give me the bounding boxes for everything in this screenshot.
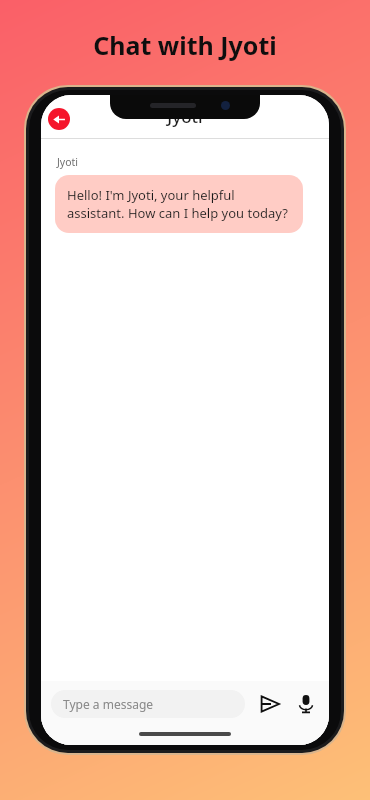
button[interactable]: Voice input [293,691,319,717]
button[interactable]: Type a message [51,690,245,718]
button[interactable]: Send [257,691,283,717]
button[interactable]: Hello! I'm Jyoti, your helpful assistant… [55,175,303,233]
staticText: Chat with Jyoti [0,28,370,62]
staticText: Jyoti [41,105,329,128]
staticText: Hello! I'm Jyoti, your helpful assistant… [67,186,291,222]
button[interactable]: Back [48,108,70,130]
staticText: Jyoti [57,155,79,169]
staticText: Type a message [63,696,154,712]
